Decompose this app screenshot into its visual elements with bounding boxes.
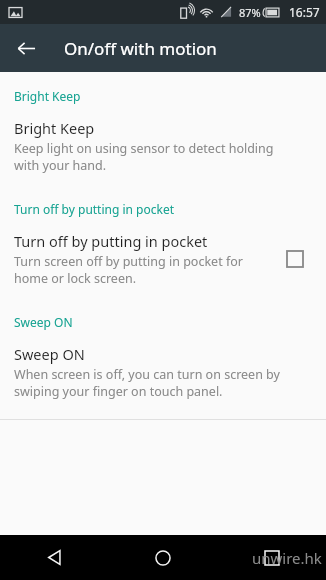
- staticText: Turn screen off by putting in pocket for…: [14, 253, 266, 286]
- staticText: Sweep ON: [14, 314, 312, 330]
- button[interactable]: Recent apps: [217, 535, 326, 580]
- button[interactable]: Back: [0, 535, 108, 580]
- staticText: When screen is off, you can turn on scre…: [14, 366, 294, 399]
- staticText: Bright Keep: [14, 88, 312, 104]
- button[interactable]: Home: [108, 535, 217, 580]
- button[interactable]: Turn off by putting in pocket: [0, 217, 326, 292]
- staticText: 87%: [239, 5, 261, 20]
- button[interactable]: Sweep ON: [0, 330, 326, 405]
- staticText: unwire.hk: [252, 548, 322, 568]
- button[interactable]: Turn off by putting in pocket checkbox: [278, 242, 312, 276]
- staticText: Turn off by putting in pocket: [14, 201, 312, 217]
- button[interactable]: Bright Keep: [0, 104, 326, 179]
- staticText: Turn off by putting in pocket: [14, 231, 208, 251]
- staticText: Keep light on using sensor to detect hol…: [14, 140, 294, 173]
- staticText: On/off with motion: [64, 37, 217, 60]
- staticText: 16:57: [289, 4, 320, 20]
- staticText: Sweep ON: [14, 344, 85, 364]
- staticText: Bright Keep: [14, 118, 95, 138]
- button[interactable]: Back: [4, 26, 48, 70]
